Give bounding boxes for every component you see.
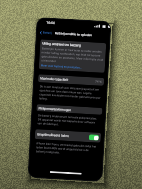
staticText: iPhone leert hoe u uw toestel gebruikt z… (36, 141, 98, 157)
staticText: Maximale capaciteit (40, 76, 68, 82)
button[interactable]: Piekprestatievermogen (36, 104, 103, 115)
staticText: 74 % (95, 79, 102, 84)
staticText: 16:44 (46, 20, 55, 25)
staticText: Meer over batterij en prestaties... (41, 63, 83, 70)
staticText: Batterijen kunnen er naarmate ze ouder w… (41, 46, 104, 66)
button[interactable]: Terug naar Batterij (40, 30, 52, 35)
button[interactable]: Geoptimaliseerd laden aan (89, 134, 99, 141)
staticText: Dit is een maatstaf voor de batterijcapa… (39, 84, 102, 104)
staticText: Uitleg omtrent uw batterij (42, 41, 81, 47)
staticText: Piekprestatievermogen (38, 106, 71, 112)
staticText: Batterij (43, 30, 52, 35)
staticText: De batterij ondersteunt normale piekpres… (37, 113, 100, 129)
button[interactable]: Uitleg omtrent uw batterij (39, 39, 106, 73)
staticText: Batterijconditie en opladen (55, 31, 93, 37)
staticText: Geoptimaliseerd laden (37, 132, 69, 138)
button[interactable]: Maximale capaciteit (38, 74, 104, 86)
button[interactable]: Geoptimaliseerd laden (35, 129, 101, 143)
